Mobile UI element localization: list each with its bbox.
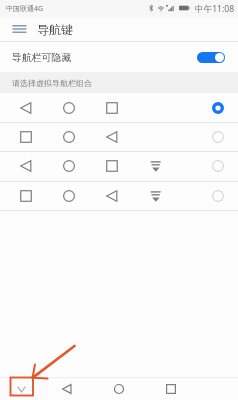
staticText: 导航键 bbox=[37, 22, 73, 37]
button[interactable]: Menu bbox=[6, 17, 32, 41]
button[interactable]: Home bbox=[92, 378, 145, 400]
staticText: 中午11:08 bbox=[195, 3, 235, 15]
button[interactable]: 导航栏可隐藏 bbox=[0, 42, 238, 72]
staticText: 中国联通4G bbox=[6, 4, 44, 14]
button[interactable] bbox=[0, 93, 238, 122]
staticText: 请选择虚拟导航栏组合 bbox=[12, 78, 92, 88]
button[interactable]: Recent apps bbox=[145, 378, 197, 400]
button[interactable] bbox=[0, 122, 238, 151]
button[interactable] bbox=[0, 151, 238, 181]
button[interactable]: Back bbox=[42, 378, 92, 400]
button[interactable]: Hide navigation bar bbox=[0, 378, 42, 400]
button[interactable] bbox=[0, 181, 238, 210]
staticText: 导航栏可隐藏 bbox=[12, 51, 72, 63]
